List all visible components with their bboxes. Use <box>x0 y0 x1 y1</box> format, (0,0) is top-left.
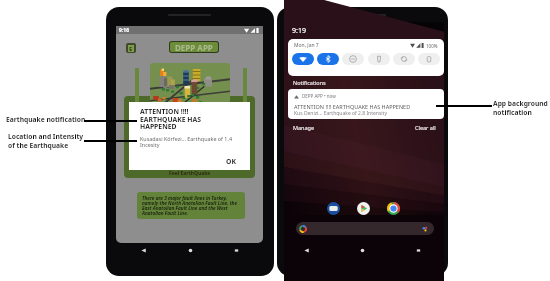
button[interactable]: Chrome <box>387 202 400 215</box>
button[interactable]: Play Store <box>357 202 370 215</box>
staticText: DEPP APP • now <box>302 93 336 99</box>
button[interactable]: DEPP APP • now <box>288 89 444 119</box>
staticText: ATTENTION !!!! EARTHQUAKE HAS HAPPENED <box>294 103 411 110</box>
button[interactable]: Recents <box>233 247 240 254</box>
staticText: E <box>129 45 133 52</box>
button[interactable]: Recents <box>415 247 422 254</box>
button[interactable]: OK <box>226 157 236 166</box>
button[interactable]: Feel EarthQuake <box>124 96 255 178</box>
staticText: Notifications <box>293 79 326 86</box>
staticText: DEPP APP <box>175 42 213 52</box>
staticText: Clear all <box>415 124 436 131</box>
staticText: Manage <box>293 124 315 131</box>
staticText: OK <box>226 157 236 166</box>
staticText: ATTENTION !!!! EARTHQUAKE HAS HAPPENED <box>140 107 201 131</box>
button[interactable]: Back <box>303 247 310 254</box>
staticText: App background notification <box>493 99 548 117</box>
button[interactable]: Messages <box>327 202 340 215</box>
staticText: 9:16 <box>119 27 129 34</box>
button[interactable]: Bluetooth <box>317 53 339 65</box>
button[interactable]: DEPP APP <box>170 42 218 52</box>
button[interactable]: Wi-Fi <box>292 53 314 65</box>
staticText: There are 3 major fault lines in Turkey,… <box>142 195 240 216</box>
staticText: Kusadasi Körfezi... Earthquake of 1.4 In… <box>140 135 232 148</box>
button[interactable]: Do not disturb <box>342 53 364 65</box>
staticText: Location and Intensity of the Earthquake <box>8 132 84 150</box>
staticText: Feel EarthQuake <box>169 170 211 177</box>
button[interactable]: Manage <box>293 124 315 131</box>
button[interactable]: Home <box>187 247 194 254</box>
staticText: 100% <box>426 43 438 49</box>
staticText: Kus Denizi... Earthquake of 2.8 Intensit… <box>294 110 387 117</box>
staticText: 9:19 <box>292 26 306 36</box>
button[interactable]: Clear all <box>415 124 436 131</box>
button[interactable]: App logo <box>126 43 136 53</box>
button[interactable]: Battery saver <box>418 53 440 65</box>
button[interactable]: Flashlight <box>368 53 390 65</box>
staticText: Mon, Jan 7 <box>294 42 319 49</box>
button[interactable]: Search <box>296 222 434 235</box>
button[interactable]: Home <box>359 247 366 254</box>
staticText: Earthquake notification <box>6 115 86 124</box>
button[interactable]: Auto-rotate <box>393 53 415 65</box>
button[interactable]: Back <box>140 247 147 254</box>
